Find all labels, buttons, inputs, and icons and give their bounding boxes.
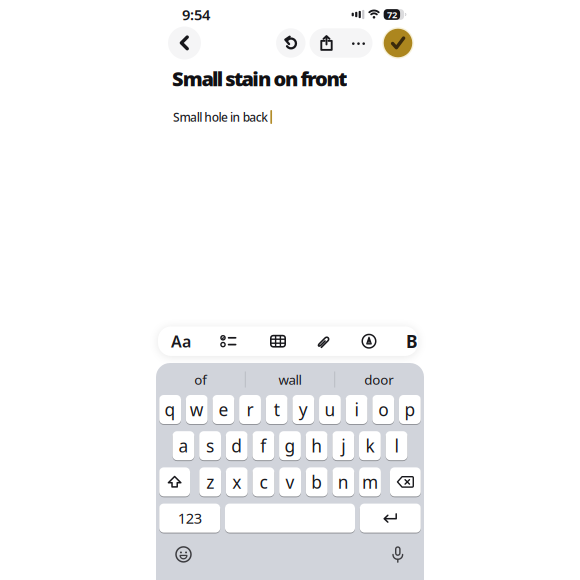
staticText: u	[324, 398, 335, 421]
staticText: g	[284, 434, 295, 457]
button[interactable]	[276, 28, 306, 58]
button[interactable]	[346, 29, 370, 58]
button[interactable]: u	[319, 395, 341, 424]
button[interactable]	[159, 504, 220, 533]
button[interactable]: l	[386, 431, 407, 460]
staticText: door	[364, 371, 394, 388]
button[interactable]: c	[252, 467, 274, 496]
button[interactable]: o	[372, 395, 394, 424]
button[interactable]	[220, 335, 236, 347]
button[interactable]	[225, 504, 355, 533]
staticText: z	[206, 470, 214, 493]
staticText: b	[311, 470, 322, 493]
staticText: B	[406, 330, 418, 353]
button[interactable]: door	[339, 369, 419, 389]
button[interactable]: j	[332, 431, 354, 460]
staticText: s	[206, 434, 214, 457]
staticText: of	[194, 371, 207, 388]
staticText: v	[286, 470, 295, 493]
staticText: c	[259, 470, 267, 493]
button[interactable]	[270, 335, 286, 348]
button[interactable]: B	[406, 330, 418, 353]
button[interactable]: wall	[250, 369, 330, 389]
button[interactable]: m	[359, 467, 381, 496]
staticText: p	[404, 398, 415, 421]
button[interactable]: b	[306, 467, 328, 496]
staticText: f	[260, 434, 266, 457]
button[interactable]: z	[199, 467, 221, 496]
staticText: l	[395, 434, 399, 457]
button[interactable]	[390, 467, 421, 496]
staticText: x	[232, 470, 241, 493]
staticText: a	[178, 434, 188, 457]
button[interactable]	[392, 546, 403, 563]
button[interactable]: p	[399, 395, 421, 424]
button[interactable]: r	[239, 395, 261, 424]
button[interactable]: d	[226, 431, 248, 460]
button[interactable]	[314, 28, 338, 57]
staticText: Small hole in back	[173, 109, 268, 125]
staticText: y	[299, 398, 308, 421]
button[interactable]: Aa	[171, 331, 191, 352]
staticText: o	[378, 398, 388, 421]
button[interactable]: f	[252, 431, 274, 460]
button[interactable]: a	[172, 431, 194, 460]
button[interactable]: w	[186, 395, 208, 424]
button[interactable]	[382, 27, 414, 59]
button[interactable]: s	[199, 431, 221, 460]
button[interactable]: v	[279, 467, 301, 496]
staticText: k	[365, 434, 374, 457]
staticText: 123	[178, 508, 202, 528]
staticText: Aa	[171, 331, 191, 352]
button[interactable]: x	[226, 467, 248, 496]
staticText: t	[274, 398, 280, 421]
staticText: r	[246, 398, 253, 421]
button[interactable]: i	[346, 395, 367, 424]
staticText: e	[218, 398, 228, 421]
staticText: wall	[278, 371, 301, 388]
staticText: w	[190, 398, 204, 421]
button[interactable]: h	[306, 431, 327, 460]
button[interactable]: g	[279, 431, 301, 460]
staticText: i	[355, 398, 359, 421]
staticText: q	[165, 398, 176, 421]
button[interactable]: e	[212, 395, 234, 424]
button[interactable]	[360, 504, 421, 533]
button[interactable]: q	[159, 395, 181, 424]
staticText: n	[338, 470, 349, 493]
staticText: j	[341, 434, 345, 457]
staticText: d	[231, 434, 242, 457]
staticText: h	[311, 434, 322, 457]
button[interactable]: n	[332, 467, 354, 496]
button[interactable]: of	[161, 369, 241, 389]
staticText: Small stain on front	[172, 65, 347, 92]
button[interactable]	[361, 334, 376, 349]
button[interactable]: y	[292, 395, 314, 424]
button[interactable]	[168, 26, 201, 59]
button[interactable]	[159, 467, 190, 496]
staticText: m	[362, 470, 378, 493]
staticText: 72	[387, 8, 397, 21]
button[interactable]	[175, 546, 192, 563]
staticText: 9:54	[182, 5, 210, 24]
button[interactable]: t	[266, 395, 288, 424]
button[interactable]	[317, 334, 331, 349]
button[interactable]: k	[359, 431, 381, 460]
